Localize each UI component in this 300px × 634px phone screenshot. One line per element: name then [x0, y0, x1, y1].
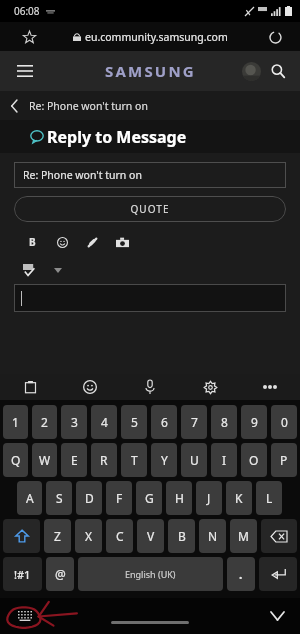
staticText: 7: [191, 414, 198, 430]
staticText: Z: [54, 528, 61, 544]
button[interactable]: More options: [50, 262, 66, 278]
button[interactable]: W: [32, 443, 57, 477]
button[interactable]: P: [271, 443, 297, 477]
button[interactable]: Re: Phone won't turn on: [14, 162, 286, 188]
staticText: SAMSUNG: [105, 61, 196, 81]
button[interactable]: I: [211, 443, 237, 477]
button[interactable]: E: [61, 443, 87, 477]
button[interactable]: A: [17, 481, 42, 515]
button[interactable]: B: [168, 519, 195, 553]
staticText: B: [29, 235, 36, 249]
button[interactable]: 0: [271, 405, 297, 439]
button[interactable]: Q: [3, 443, 28, 477]
staticText: 2: [41, 414, 48, 430]
staticText: F: [116, 490, 123, 506]
staticText: D: [85, 490, 94, 506]
staticText: R: [100, 452, 108, 468]
staticText: J: [207, 490, 211, 506]
button[interactable]: Reload: [264, 26, 286, 48]
staticText: K: [235, 490, 243, 506]
button[interactable]: Clipboard: [0, 374, 60, 400]
button[interactable]: Emoji: [52, 232, 72, 252]
button[interactable]: Keyboard layout: [14, 605, 36, 627]
button[interactable]: Bold: [22, 232, 42, 252]
button[interactable]: Period: [227, 557, 255, 591]
button[interactable]: More: [240, 374, 300, 400]
button[interactable]: Shift: [3, 519, 40, 553]
staticText: 0: [281, 414, 288, 430]
staticText: H: [175, 490, 184, 506]
button[interactable]: Voice input: [120, 374, 180, 400]
staticText: G: [145, 490, 154, 506]
staticText: 4: [101, 414, 108, 430]
button[interactable]: Y: [151, 443, 177, 477]
staticText: !#1: [14, 567, 31, 582]
staticText: Re: Phone won't turn on: [23, 168, 142, 182]
button[interactable]: L: [256, 481, 282, 515]
staticText: 5: [131, 414, 138, 430]
button[interactable]: 5: [121, 405, 147, 439]
staticText: Q: [11, 452, 21, 468]
button[interactable]: QUOTE: [14, 196, 286, 222]
button[interactable]: M: [230, 519, 257, 553]
button[interactable]: T: [121, 443, 147, 477]
button[interactable]: Enter: [259, 557, 297, 591]
button[interactable]: 4: [91, 405, 117, 439]
button[interactable]: Z: [44, 519, 71, 553]
staticText: A: [26, 490, 34, 506]
staticText: Y: [161, 452, 168, 468]
button[interactable]: Settings: [180, 374, 240, 400]
button[interactable]: Menu: [10, 56, 40, 86]
button[interactable]: N: [199, 519, 226, 553]
button[interactable]: Link: [82, 232, 102, 252]
staticText: B: [178, 528, 186, 544]
staticText: L: [266, 490, 273, 506]
staticText: M: [238, 528, 249, 544]
staticText: T: [131, 452, 138, 468]
staticText: Re: Phone won't turn on: [29, 99, 148, 113]
button[interactable]: Re: Phone won't turn on: [0, 91, 300, 120]
button[interactable]: [14, 284, 286, 312]
button[interactable]: Space: [78, 557, 223, 591]
button[interactable]: Symbols: [3, 557, 42, 591]
button[interactable]: 6: [151, 405, 177, 439]
button[interactable]: O: [241, 443, 267, 477]
button[interactable]: H: [166, 481, 192, 515]
staticText: O: [249, 452, 259, 468]
staticText: X: [85, 528, 93, 544]
staticText: I: [222, 452, 227, 468]
staticText: E: [71, 452, 78, 468]
button[interactable]: Hide keyboard: [266, 605, 288, 627]
button[interactable]: 7: [181, 405, 207, 439]
button[interactable]: Bookmark: [18, 26, 40, 48]
button[interactable]: V: [137, 519, 164, 553]
staticText: @: [55, 566, 66, 582]
button[interactable]: 1: [3, 405, 28, 439]
staticText: N: [208, 528, 218, 544]
button[interactable]: C: [106, 519, 133, 553]
button[interactable]: 9: [241, 405, 267, 439]
button[interactable]: Search: [264, 57, 292, 85]
button[interactable]: Camera: [112, 232, 132, 252]
button[interactable]: U: [181, 443, 207, 477]
button[interactable]: 8: [211, 405, 237, 439]
button[interactable]: S: [46, 481, 72, 515]
button[interactable]: F: [106, 481, 132, 515]
button[interactable]: Backspace: [261, 519, 297, 553]
button[interactable]: 3: [61, 405, 87, 439]
button[interactable]: Profile: [238, 58, 264, 84]
staticText: eu.community.samsung.com: [85, 30, 228, 44]
button[interactable]: G: [136, 481, 162, 515]
button[interactable]: X: [75, 519, 102, 553]
button[interactable]: 2: [32, 405, 57, 439]
button[interactable]: R: [91, 443, 117, 477]
button[interactable]: K: [226, 481, 252, 515]
button[interactable]: D: [76, 481, 102, 515]
staticText: QUOTE: [130, 202, 170, 216]
button[interactable]: J: [196, 481, 222, 515]
button[interactable]: At sign: [46, 557, 74, 591]
staticText: S: [56, 490, 63, 506]
button[interactable]: Spell check: [20, 261, 38, 279]
staticText: English (UK): [125, 568, 176, 580]
button[interactable]: Emoji: [60, 374, 120, 400]
